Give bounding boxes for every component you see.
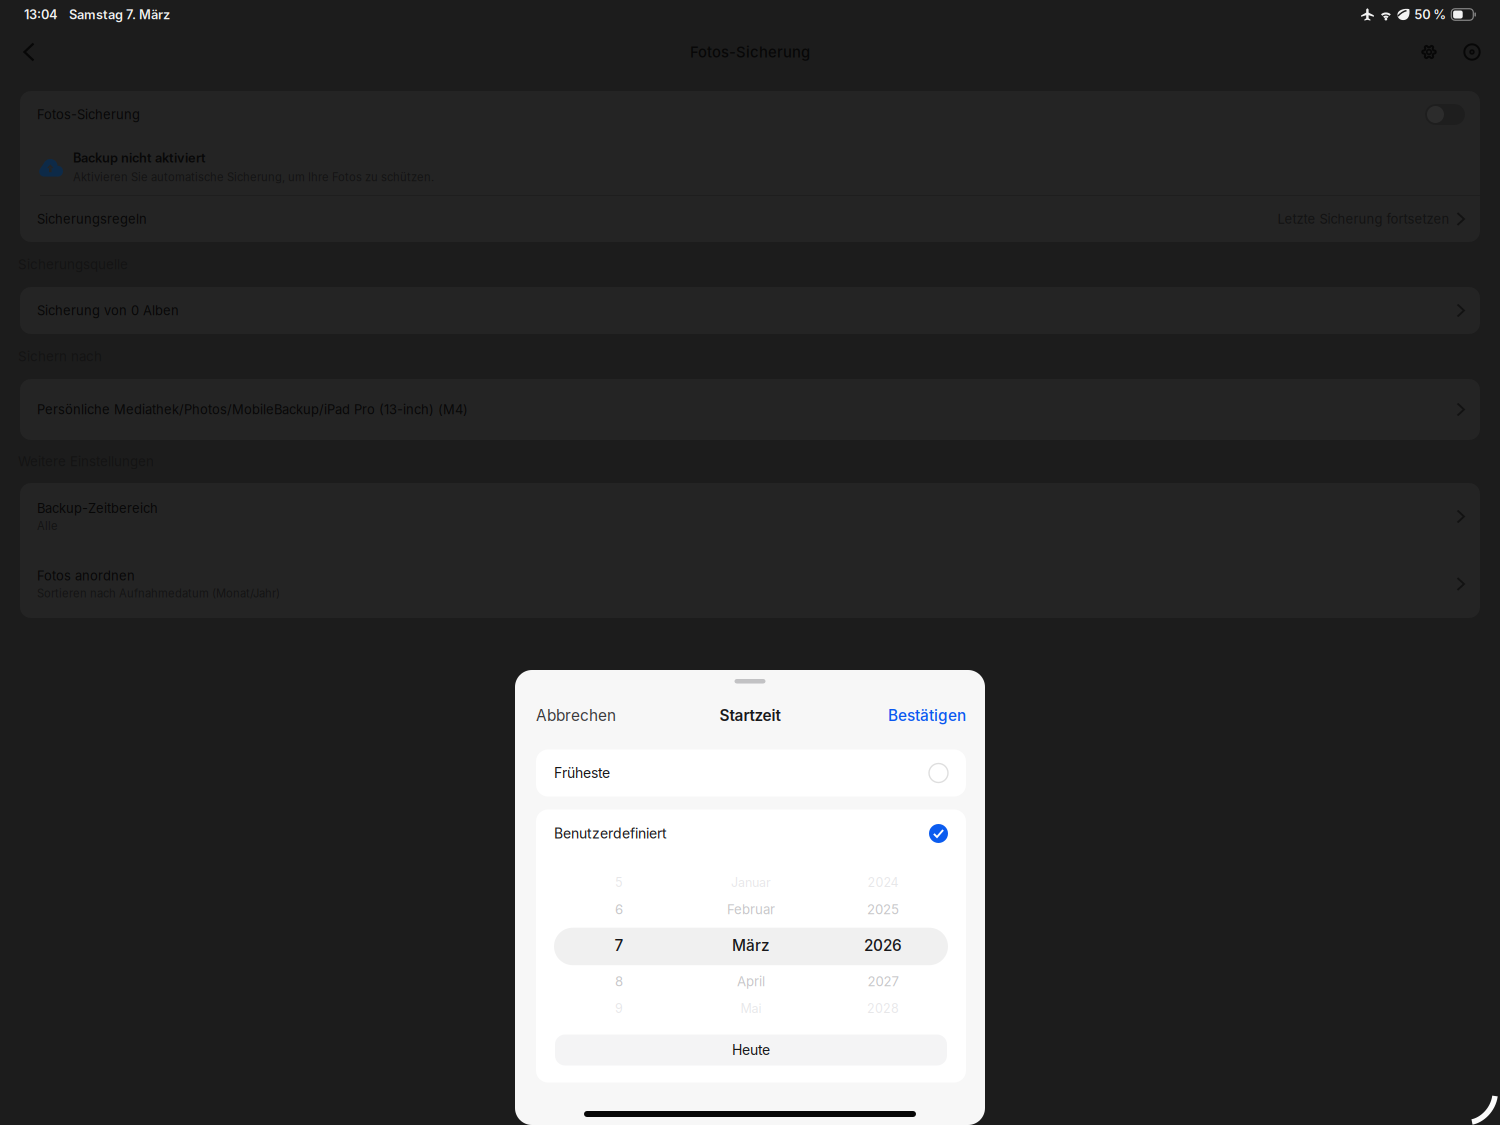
staticText: April	[737, 973, 765, 989]
staticText: Bestätigen	[888, 706, 966, 725]
staticText: Mai	[740, 1001, 761, 1016]
button[interactable]: Aufnahme	[1453, 33, 1491, 71]
staticText: Backup-Zeitbereich	[37, 500, 158, 516]
staticText: 5	[615, 875, 623, 890]
staticText: 2025	[867, 901, 899, 917]
staticText: Benutzerdefiniert	[554, 825, 667, 842]
staticText: Alle	[37, 519, 58, 533]
staticText: 2026	[864, 936, 902, 955]
button[interactable]: Früheste	[536, 749, 966, 796]
staticText: Januar	[731, 875, 771, 890]
staticText: Abbrechen	[536, 706, 616, 725]
staticText: Fotos-Sicherung	[690, 43, 810, 61]
staticText: März	[732, 936, 770, 955]
button[interactable]: Einstellungen	[1410, 33, 1448, 71]
staticText: Früheste	[554, 764, 610, 781]
staticText: Sicherung von 0 Alben	[37, 303, 179, 318]
staticText: Aktivieren Sie automatische Sicherung, u…	[73, 170, 434, 184]
button[interactable]: Benutzerdefiniert	[536, 809, 966, 857]
staticText: Februar	[727, 901, 775, 917]
button[interactable]: Heute	[555, 1034, 947, 1065]
staticText: 7	[614, 936, 623, 955]
staticText: 9	[615, 1001, 623, 1016]
staticText: 50 %	[1414, 7, 1446, 22]
staticText: 6	[615, 901, 623, 917]
staticText: 2028	[867, 1001, 899, 1016]
staticText: 2024	[867, 875, 898, 890]
staticText: Letzte Sicherung fortsetzen	[1277, 211, 1449, 227]
button[interactable]: Zurück	[9, 32, 49, 72]
staticText: Fotos-Sicherung	[37, 107, 140, 122]
staticText: Samstag 7. März	[69, 7, 170, 22]
staticText: Startzeit	[719, 706, 780, 725]
staticText: Fotos anordnen	[37, 568, 135, 583]
button[interactable]: Bestätigen	[888, 706, 966, 725]
staticText: 13:04	[24, 7, 58, 22]
staticText: 8	[615, 973, 623, 989]
staticText: Persönliche Mediathek/Photos/MobileBacku…	[37, 402, 468, 417]
staticText: 2027	[867, 973, 898, 989]
staticText: Backup nicht aktiviert	[73, 150, 206, 165]
staticText: Heute	[732, 1041, 770, 1058]
staticText: Sicherungsregeln	[37, 211, 147, 227]
button[interactable]: Abbrechen	[536, 706, 616, 725]
staticText: Sortieren nach Aufnahmedatum (Monat/Jahr…	[37, 586, 280, 600]
